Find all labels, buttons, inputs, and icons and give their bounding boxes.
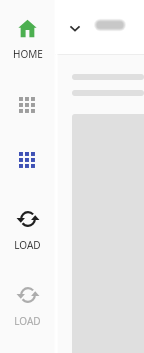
button[interactable]: HOME (0, 16, 55, 67)
button[interactable]: LOAD (0, 207, 55, 258)
button[interactable]: LOAD (0, 283, 55, 334)
staticText: LOAD (14, 314, 41, 328)
staticText: HOME (13, 47, 43, 61)
button[interactable]: Expand (66, 19, 84, 37)
button[interactable]: Dashboard (0, 147, 55, 175)
staticText: LOAD (14, 238, 41, 252)
button[interactable]: Apps (0, 92, 55, 120)
